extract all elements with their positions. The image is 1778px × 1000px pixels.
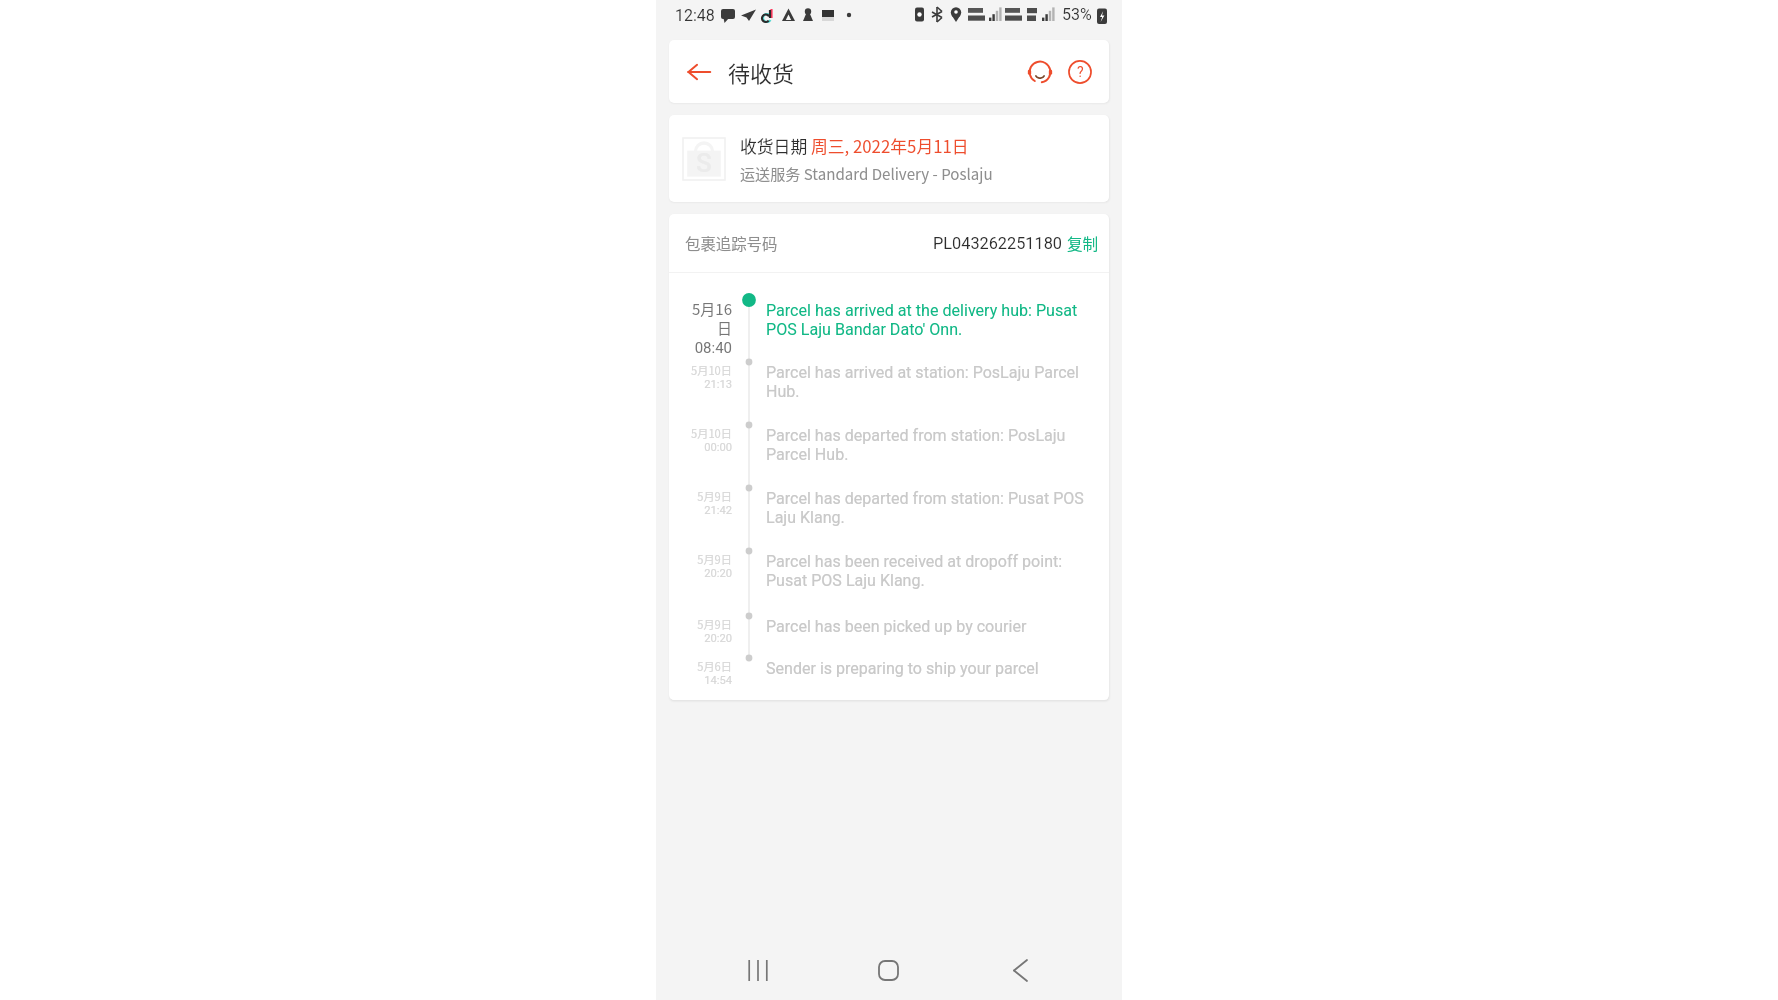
staticText: Parcel has arrived at station: PosLaju P… (766, 363, 1080, 401)
staticText: Parcel has departed from station: PosLaj… (766, 426, 1066, 464)
staticText: 收货日期 周三, 2022年5月11日 (740, 134, 969, 158)
button[interactable]: Back (992, 942, 1048, 998)
staticText: 5月9日 (697, 616, 732, 632)
staticText: Parcel has departed from station: Pusat … (766, 489, 1084, 527)
staticText: 待收货 (728, 56, 795, 88)
button[interactable]: Customer support (1022, 54, 1058, 90)
button[interactable]: 复制 (1067, 232, 1099, 255)
staticText: Sender is preparing to ship your parcel (766, 659, 1039, 678)
staticText: 53% (1062, 5, 1092, 24)
staticText: 包裹追踪号码 (685, 232, 778, 254)
staticText: 12:48 (675, 6, 715, 25)
staticText: 20:20 (704, 567, 732, 580)
staticText: 5月10日 (690, 362, 732, 378)
staticText: 00:00 (704, 441, 732, 454)
staticText: 5月9日 (697, 488, 732, 504)
staticText: ? (1077, 64, 1084, 80)
button[interactable]: Back (682, 55, 716, 89)
staticText: 08:40 (694, 339, 732, 357)
staticText: Parcel has been picked up by courier (766, 617, 1027, 636)
staticText: 21:13 (704, 378, 732, 391)
staticText: 5月6日 (697, 658, 732, 674)
button[interactable]: Recent apps (730, 942, 786, 998)
button[interactable]: Help (1062, 54, 1098, 90)
staticText: 14:54 (704, 674, 732, 687)
staticText: Parcel has arrived at the delivery hub: … (766, 301, 1078, 339)
staticText: 5月10日 (690, 425, 732, 441)
staticText: 复制 (1067, 232, 1099, 255)
staticText: 5月9日 (697, 551, 732, 567)
staticText: 运送服务 Standard Delivery - Poslaju (740, 162, 993, 184)
staticText: S (696, 148, 712, 178)
staticText: Parcel has been received at dropoff poin… (766, 552, 1063, 590)
staticText: 5月16 日 (692, 298, 732, 339)
staticText: 20:20 (704, 632, 732, 645)
staticText: PL043262251180 (933, 234, 1062, 253)
staticText: 21:42 (704, 504, 732, 517)
button[interactable]: Home (860, 942, 916, 998)
